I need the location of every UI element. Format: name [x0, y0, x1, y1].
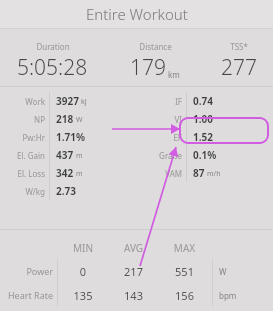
staticText: VAM — [136, 168, 182, 179]
staticText: 87 — [193, 166, 205, 180]
staticText: 5:05:28 — [17, 53, 88, 82]
staticText: MIN — [58, 241, 108, 255]
staticText: MAX — [159, 241, 210, 255]
staticText: VI — [136, 114, 182, 125]
button[interactable]: Power — [0, 259, 273, 283]
staticText: 143 — [108, 288, 159, 303]
staticText: 179 — [130, 53, 166, 82]
staticText: 1.52 — [193, 130, 213, 144]
staticText: El. Gain — [0, 150, 45, 161]
button[interactable]: El. Loss — [0, 164, 136, 182]
staticText: Power — [0, 265, 53, 277]
button[interactable]: Heart Rate — [0, 283, 273, 307]
staticText: 1.71% — [56, 130, 85, 144]
button[interactable]: IF — [136, 92, 273, 110]
staticText: 217 — [108, 264, 159, 279]
staticText: Grade — [136, 150, 182, 161]
staticText: 277 — [221, 53, 257, 82]
button[interactable]: VAM — [136, 164, 273, 182]
staticText: 1.00 — [193, 112, 213, 126]
button[interactable]: W/kg — [0, 182, 136, 200]
staticText: 0.74 — [193, 94, 213, 108]
staticText: W — [219, 266, 227, 277]
staticText: Distance — [139, 41, 172, 52]
staticText: W — [76, 115, 83, 125]
button[interactable]: Entire Workout — [0, 0, 273, 28]
staticText: bpm — [219, 290, 237, 301]
staticText: kJ — [81, 97, 87, 107]
button[interactable]: VI — [136, 110, 273, 128]
staticText: m — [76, 151, 83, 161]
button[interactable]: El. Gain — [0, 146, 136, 164]
staticText: 551 — [159, 264, 210, 279]
button[interactable]: EF — [136, 128, 273, 146]
button[interactable]: TSS* — [221, 41, 257, 82]
button[interactable]: Grade — [136, 146, 273, 164]
staticText: 342 — [56, 166, 74, 180]
staticText: 218 — [56, 112, 74, 126]
button[interactable]: Pw:Hr — [0, 128, 136, 146]
staticText: 0.1% — [193, 148, 217, 162]
button[interactable]: Distance — [130, 41, 180, 82]
staticText: 437 — [56, 148, 74, 162]
staticText: m/h — [207, 169, 221, 179]
staticText: W/kg — [0, 186, 45, 197]
staticText: Entire Workout — [86, 4, 188, 24]
staticText: IF — [136, 96, 182, 107]
staticText: 3927 — [56, 94, 79, 108]
staticText: EF — [136, 132, 182, 143]
button[interactable]: Duration — [17, 41, 88, 82]
staticText: TSS* — [230, 41, 248, 52]
staticText: Work — [0, 96, 45, 107]
staticText: m — [76, 169, 83, 179]
staticText: 2.73 — [56, 184, 76, 198]
staticText: AVG — [108, 241, 159, 255]
staticText: 0 — [58, 264, 108, 279]
button[interactable]: NP — [0, 110, 136, 128]
staticText: Pw:Hr — [0, 132, 45, 143]
staticText: Duration — [36, 41, 70, 52]
staticText: 156 — [159, 288, 210, 303]
staticText: El. Loss — [0, 168, 45, 179]
staticText: Heart Rate — [0, 289, 53, 301]
button[interactable]: Work — [0, 92, 136, 110]
staticText: 135 — [58, 288, 108, 303]
staticText: NP — [0, 114, 45, 125]
staticText: km — [168, 69, 180, 80]
